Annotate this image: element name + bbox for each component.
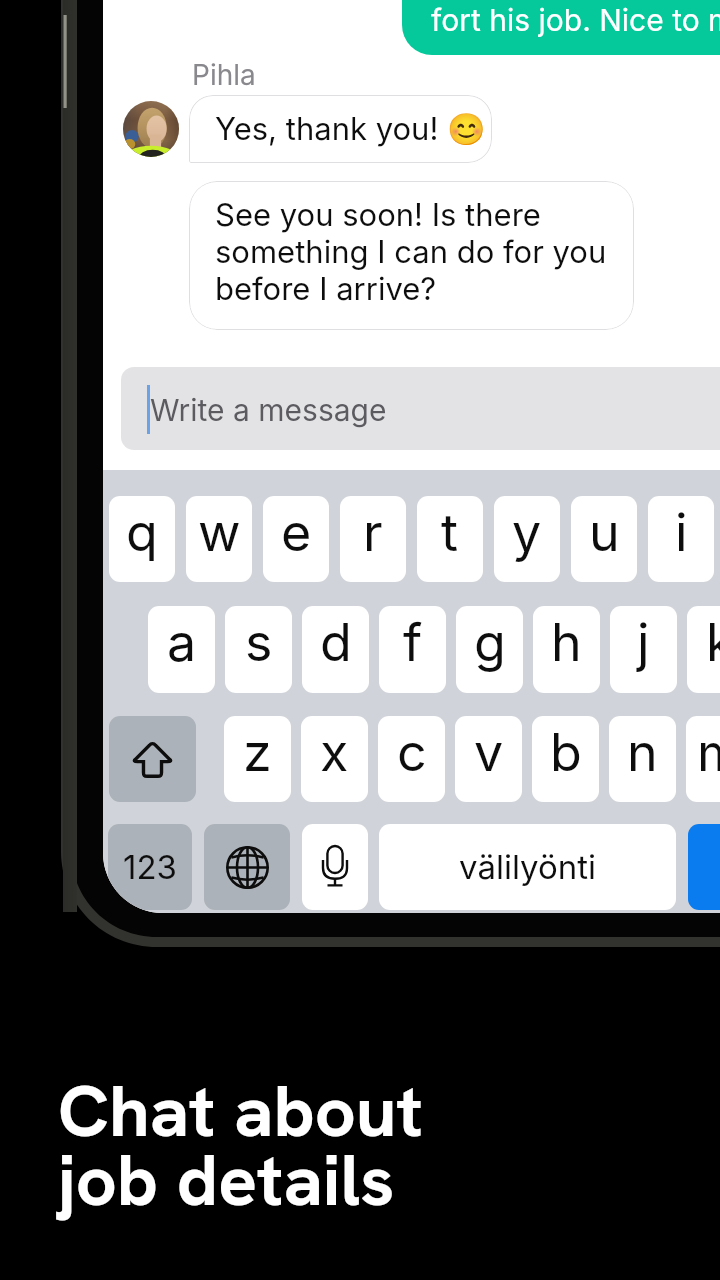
staticText: d [320,611,352,674]
staticText: Chat about job details [58,1064,423,1227]
button[interactable]: k [687,606,720,693]
staticText: fort his job. Nice to m [431,2,720,38]
staticText: r [363,501,383,564]
button[interactable]: g [456,606,523,693]
staticText: w [198,501,241,564]
button[interactable]: Yes, thank you! 😊 [189,95,492,163]
button[interactable]: t [417,496,483,582]
button[interactable]: h [533,606,600,693]
button[interactable]: Switch keyboard language [204,824,290,910]
button[interactable]: n [609,716,676,802]
button[interactable]: c [378,716,445,802]
button[interactable]: f [379,606,446,693]
staticText: i [675,501,688,564]
staticText: b [550,721,582,784]
button[interactable]: d [302,606,369,693]
button[interactable]: b [532,716,599,802]
button[interactable]: fort his job. Nice to m [402,0,720,55]
staticText: g [474,611,506,674]
button[interactable]: Voice input [302,824,368,910]
staticText: q [126,501,158,564]
staticText: h [551,611,582,674]
staticText: j [637,611,650,674]
button[interactable]: r [340,496,406,582]
staticText: m [697,721,720,784]
staticText: Write a message [150,392,387,428]
staticText: See you soon! Is there something I can d… [215,196,607,307]
button[interactable]: z [224,716,291,802]
button[interactable]: q [109,496,175,582]
staticText: t [441,501,459,564]
button[interactable]: a [148,606,215,693]
button[interactable]: m [686,716,720,802]
staticText: e [281,501,312,564]
staticText: x [320,721,349,784]
button[interactable]: y [494,496,560,582]
staticText: f [403,611,423,674]
staticText: 123 [123,847,177,887]
button[interactable]: 123 [108,824,192,910]
button[interactable]: u [571,496,637,582]
staticText: a [167,611,197,674]
button[interactable]: e [263,496,329,582]
button[interactable]: j [610,606,677,693]
button[interactable]: Shift [109,716,196,802]
staticText: Yes, thank you! 😊 [215,110,486,148]
staticText: y [512,501,542,564]
staticText: Pihla [192,58,256,92]
staticText: k [706,611,720,674]
staticText: välilyönti [459,847,597,887]
button[interactable]: w [186,496,252,582]
button[interactable]: See you soon! Is there something I can d… [189,181,634,330]
staticText: n [627,721,658,784]
staticText: z [243,721,272,784]
button[interactable]: Send [688,824,720,910]
staticText: v [474,721,504,784]
button[interactable]: välilyönti [379,824,676,910]
staticText: s [245,611,273,674]
staticText: u [589,501,620,564]
button[interactable]: x [301,716,368,802]
button[interactable]: i [648,496,714,582]
button[interactable]: s [225,606,292,693]
button[interactable]: Write a message [121,367,720,450]
staticText: c [397,721,427,784]
button[interactable]: v [455,716,522,802]
